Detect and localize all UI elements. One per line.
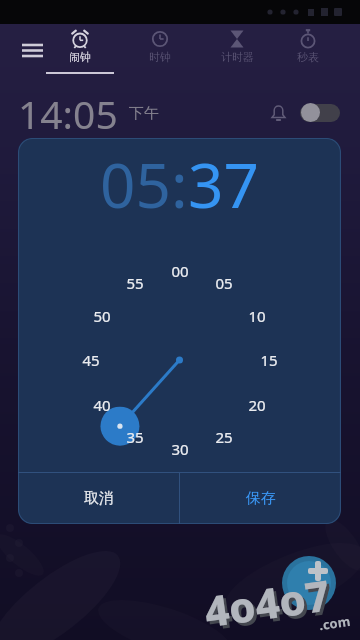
staticText: 20 [248, 395, 266, 415]
staticText: : [171, 142, 188, 226]
staticText: 下午 [129, 104, 159, 123]
staticText: 05 [215, 273, 233, 293]
staticText: 55 [126, 273, 144, 293]
button[interactable] [282, 556, 336, 610]
staticText: 50 [93, 306, 111, 326]
button[interactable]: 取消 [18, 473, 179, 524]
button[interactable]: 计时器 [202, 28, 272, 72]
button[interactable] [14, 32, 50, 68]
button[interactable] [300, 104, 340, 122]
staticText: 时钟 [149, 50, 171, 64]
staticText: 4o4o7 [201, 565, 333, 639]
staticText: 保存 [246, 489, 276, 508]
button[interactable]: 秒表 [273, 28, 343, 72]
staticText: 秒表 [297, 50, 319, 64]
staticText: 35 [126, 427, 144, 447]
staticText: 15 [260, 350, 278, 370]
staticText: 45 [82, 350, 100, 370]
staticText: 14:05 [18, 87, 118, 140]
staticText: 4o4o7 [204, 568, 336, 640]
staticText: 30 [171, 439, 189, 459]
button[interactable]: 闹钟 [45, 28, 115, 72]
staticText: 闹钟 [69, 50, 91, 64]
button[interactable]: 时钟 [125, 28, 195, 72]
staticText: 取消 [84, 489, 114, 508]
staticText: 计时器 [221, 50, 254, 64]
button[interactable]: 保存 [180, 473, 341, 524]
staticText: 40 [93, 395, 111, 415]
staticText: 00 [171, 261, 189, 281]
staticText: .com [318, 612, 352, 634]
staticText: 10 [248, 306, 266, 326]
staticText: 25 [215, 427, 233, 447]
staticText: 37 [188, 142, 259, 226]
staticText: 05 [100, 142, 171, 226]
